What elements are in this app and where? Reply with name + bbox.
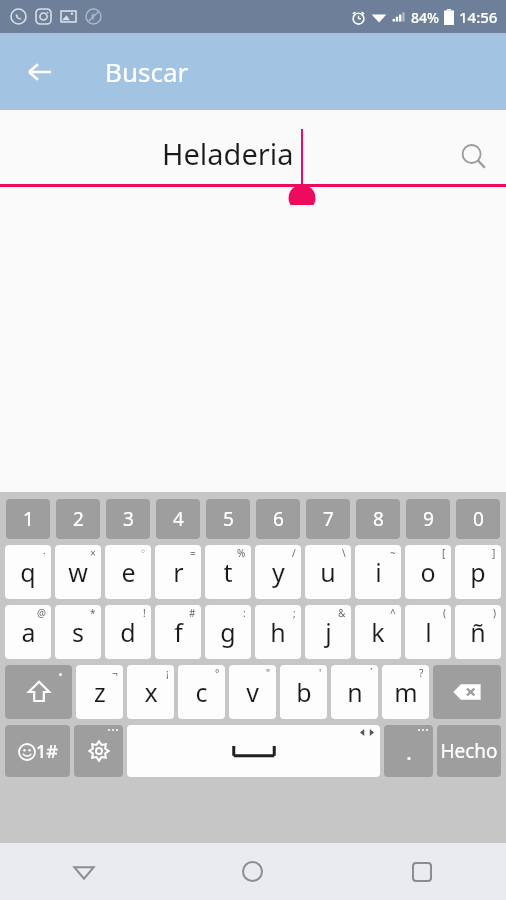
button[interactable]: c — [178, 665, 225, 719]
button[interactable]: Home — [168, 843, 337, 900]
button[interactable]: Period — [384, 725, 433, 777]
staticText: ~ — [390, 546, 396, 560]
button[interactable]: d — [105, 605, 151, 659]
button[interactable]: 6 — [256, 499, 300, 539]
button[interactable]: o — [405, 545, 451, 599]
button[interactable]: n — [331, 665, 378, 719]
staticText: h — [270, 615, 286, 649]
staticText: s — [72, 615, 84, 649]
button[interactable]: 1 — [6, 499, 50, 539]
staticText: = — [190, 546, 196, 560]
staticText: 6 — [273, 506, 284, 532]
button[interactable]: 2 — [56, 499, 100, 539]
staticText: 9 — [423, 506, 434, 532]
button[interactable]: r — [155, 545, 201, 599]
button[interactable]: Hecho — [437, 725, 501, 777]
staticText: ñ — [470, 615, 486, 649]
staticText: 8 — [373, 506, 384, 532]
button[interactable]: Emoji and symbols — [5, 725, 70, 777]
staticText: 84% — [411, 8, 439, 27]
button[interactable]: a — [5, 605, 51, 659]
button[interactable]: u — [305, 545, 351, 599]
button[interactable]: l — [405, 605, 451, 659]
button[interactable]: p — [455, 545, 501, 599]
staticText: j — [325, 615, 332, 649]
button[interactable]: q — [5, 545, 51, 599]
staticText: " — [266, 666, 271, 680]
staticText: x — [144, 675, 158, 709]
button[interactable]: ñ — [455, 605, 501, 659]
staticText: d — [120, 615, 136, 649]
staticText: w — [68, 555, 88, 589]
staticText: o — [420, 555, 436, 589]
button[interactable]: f — [155, 605, 201, 659]
staticText: . — [406, 736, 412, 766]
staticText: * — [90, 606, 96, 620]
button[interactable]: i — [355, 545, 401, 599]
button[interactable]: z — [76, 665, 123, 719]
button[interactable]: Back — [0, 843, 168, 900]
staticText: ¬ — [112, 666, 118, 680]
button[interactable]: t — [205, 545, 251, 599]
staticText: p — [470, 555, 486, 589]
button[interactable]: m — [382, 665, 429, 719]
staticText: × — [90, 546, 96, 560]
button[interactable]: h — [255, 605, 301, 659]
staticText: z — [94, 675, 106, 709]
button[interactable]: 4 — [156, 499, 200, 539]
staticText: ? — [419, 666, 424, 680]
staticText: q — [20, 555, 36, 589]
button[interactable]: g — [205, 605, 251, 659]
staticText: Hecho — [440, 738, 498, 764]
staticText: @ — [37, 606, 46, 620]
staticText: % — [237, 546, 246, 560]
staticText: & — [338, 606, 346, 620]
staticText: u — [320, 555, 336, 589]
staticText: 1 — [23, 506, 34, 532]
button[interactable]: Back — [18, 50, 62, 94]
button[interactable]: 8 — [356, 499, 400, 539]
button[interactable]: Search — [455, 138, 493, 176]
button[interactable]: x — [127, 665, 174, 719]
staticText: g — [220, 615, 236, 649]
button[interactable]: Shift — [5, 665, 72, 719]
button[interactable]: j — [305, 605, 351, 659]
button[interactable]: w — [55, 545, 101, 599]
staticText: m — [394, 675, 418, 709]
staticText: t — [223, 555, 233, 589]
staticText: Buscar — [105, 54, 189, 89]
staticText: k — [371, 615, 385, 649]
button[interactable]: v — [229, 665, 276, 719]
staticText: 0 — [473, 506, 484, 532]
button[interactable]: Recent apps — [337, 843, 506, 900]
button[interactable]: 0 — [456, 499, 500, 539]
button[interactable]: 3 — [106, 499, 150, 539]
staticText: f — [174, 615, 183, 649]
staticText: ¡ — [166, 666, 169, 680]
staticText: e — [121, 555, 136, 589]
button[interactable]: s — [55, 605, 101, 659]
staticText: b — [296, 675, 312, 709]
button[interactable]: 5 — [206, 499, 250, 539]
staticText: ' — [319, 666, 322, 680]
staticText: ◦ — [140, 546, 146, 558]
staticText: ´ — [370, 666, 373, 680]
button[interactable]: 9 — [406, 499, 450, 539]
staticText: / — [292, 546, 296, 560]
button[interactable]: b — [280, 665, 327, 719]
button[interactable]: k — [355, 605, 401, 659]
staticText: c — [195, 675, 208, 709]
button[interactable]: y — [255, 545, 301, 599]
button[interactable]: Keyboard settings — [74, 725, 123, 777]
button[interactable]: 7 — [306, 499, 350, 539]
staticText: ) — [493, 606, 496, 620]
staticText: ; — [293, 606, 296, 620]
staticText: ° — [215, 666, 220, 680]
staticText: · — [43, 546, 46, 560]
staticText: ( — [443, 606, 446, 620]
button[interactable]: e — [105, 545, 151, 599]
button[interactable]: Backspace — [433, 665, 501, 719]
staticText: 1# — [36, 739, 58, 764]
button[interactable]: Space — [127, 725, 380, 777]
staticText: ! — [143, 606, 146, 620]
